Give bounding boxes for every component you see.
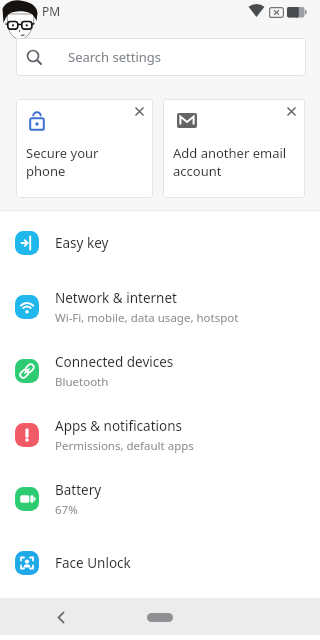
staticText: Secure your — [26, 144, 99, 162]
button[interactable]: Connected devices — [0, 339, 320, 403]
staticText: Network & internet — [55, 289, 177, 307]
button[interactable] — [48, 604, 74, 630]
staticText: Connected devices — [55, 353, 174, 371]
button[interactable] — [130, 102, 148, 120]
staticText: Search settings — [68, 48, 162, 66]
button[interactable]: Network & internet — [0, 275, 320, 339]
staticText: Battery — [55, 481, 102, 499]
staticText: Bluetooth — [55, 374, 109, 390]
button[interactable]: Add another email — [163, 99, 305, 198]
staticText: account — [173, 162, 222, 180]
button[interactable]: Secure your — [16, 99, 153, 198]
button[interactable]: Apps & notifications — [0, 403, 320, 467]
staticText: Apps & notifications — [55, 417, 182, 435]
button[interactable]: Battery — [0, 467, 320, 531]
button[interactable]: Search settings — [16, 38, 306, 76]
button[interactable] — [147, 613, 173, 622]
staticText: Add another email — [173, 144, 287, 162]
button[interactable] — [282, 102, 300, 120]
staticText: Wi-Fi, mobile, data usage, hotspot — [55, 310, 239, 326]
staticText: phone — [26, 162, 66, 180]
staticText: Permissions, default apps — [55, 438, 194, 454]
staticText: Face Unlock — [55, 554, 131, 572]
staticText: Easy key — [55, 234, 109, 252]
button[interactable]: Easy key — [0, 211, 320, 275]
staticText: 67% — [55, 502, 78, 518]
staticText: PM — [42, 3, 61, 19]
button[interactable]: Face Unlock — [0, 531, 320, 595]
